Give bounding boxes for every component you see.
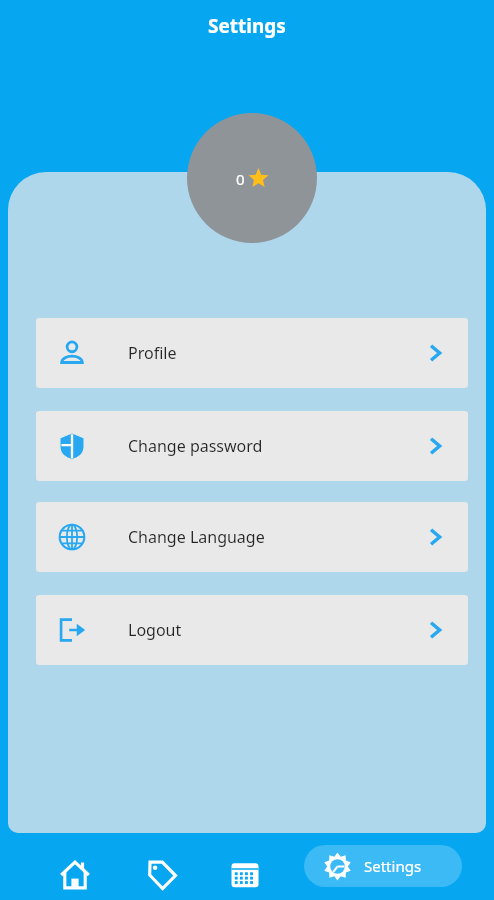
button[interactable]: Profile [36,318,468,388]
button[interactable]: Change password [36,411,468,481]
staticText: Logout [128,619,182,641]
staticText: Settings [208,13,286,39]
button[interactable]: Offers [136,849,188,900]
button[interactable]: Profile photo [187,113,317,243]
staticText: Profile [128,342,177,364]
staticText: 0 [236,169,245,189]
button[interactable]: Change Language [36,502,468,572]
staticText: Change password [128,435,263,457]
button[interactable]: Logout [36,595,468,665]
staticText: Settings [364,856,422,876]
staticText: Change Language [128,526,265,548]
button[interactable]: Settings [304,845,462,887]
button[interactable]: Calendar [219,849,271,900]
button[interactable]: Home [49,849,101,900]
